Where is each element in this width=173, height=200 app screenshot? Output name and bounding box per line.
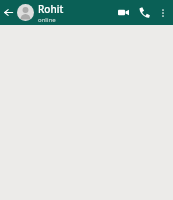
button[interactable]: Video call <box>113 0 134 25</box>
staticText: Rohit <box>38 2 64 16</box>
button[interactable]: More options <box>155 0 170 25</box>
button[interactable]: Voice call <box>134 0 155 25</box>
button[interactable]: Rohit <box>17 0 113 25</box>
button[interactable]: Back <box>0 0 17 25</box>
staticText: online <box>38 16 56 24</box>
